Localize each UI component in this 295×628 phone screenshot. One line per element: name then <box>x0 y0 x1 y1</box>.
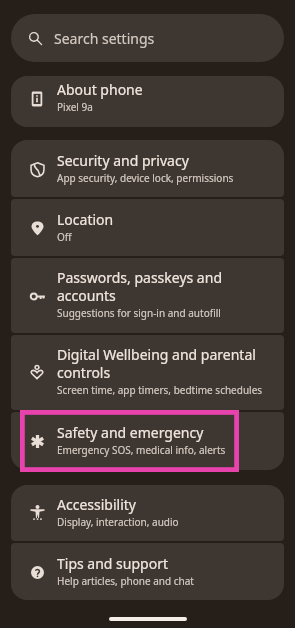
button[interactable]: Safety and emergency <box>11 412 284 470</box>
staticText: Digital Wellbeing and parental controls <box>57 345 274 382</box>
staticText: Screen time, app timers, bedtime schedul… <box>57 383 263 397</box>
button[interactable]: Search settings <box>11 14 284 62</box>
staticText: Tips and support <box>57 554 168 573</box>
staticText: Emergency SOS, medical info, alerts <box>57 443 226 457</box>
staticText: Display, interaction, audio <box>57 515 179 529</box>
staticText: Safety and emergency <box>57 423 204 442</box>
button[interactable]: Location <box>11 199 284 256</box>
button[interactable]: Digital Wellbeing and parental controls <box>11 335 284 410</box>
staticText: Accessibility <box>57 495 136 514</box>
button[interactable]: Passwords, passkeys and accounts <box>11 258 284 333</box>
button[interactable]: About phone <box>11 76 284 127</box>
staticText: Passwords, passkeys and accounts <box>57 268 274 305</box>
staticText: Off <box>57 230 72 244</box>
staticText: Pixel 9a <box>57 100 93 114</box>
staticText: Search settings <box>54 29 155 48</box>
staticText: About phone <box>57 80 143 99</box>
button[interactable]: Tips and support <box>11 543 284 600</box>
staticText: App security, device lock, permissions <box>57 171 234 185</box>
staticText: Suggestions for sign-in and autofill <box>57 306 221 320</box>
button[interactable]: Accessibility <box>11 485 284 541</box>
staticText: Help articles, phone and chat <box>57 574 194 588</box>
button[interactable]: Security and privacy <box>11 140 284 197</box>
staticText: Location <box>57 210 114 229</box>
staticText: Security and privacy <box>57 151 189 170</box>
